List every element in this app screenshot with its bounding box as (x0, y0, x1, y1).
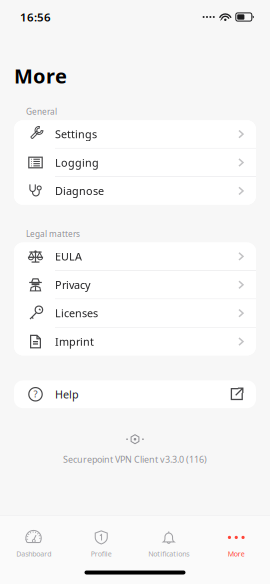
button[interactable]: Dashboard (0, 530, 67, 558)
staticText: EULA (55, 249, 82, 264)
staticText: Privacy (55, 277, 91, 292)
staticText: Logging (55, 155, 99, 170)
staticText: Notifications (148, 549, 189, 558)
staticText: 16:56 (20, 9, 51, 25)
button[interactable]: ? (14, 380, 256, 408)
button[interactable]: Diagnose (14, 177, 256, 205)
button[interactable]: Privacy (14, 271, 256, 299)
button[interactable]: EULA (14, 242, 256, 270)
button[interactable]: More (202, 530, 270, 558)
staticText: Legal matters (26, 228, 80, 240)
button[interactable]: Notifications (135, 530, 202, 558)
button[interactable]: Settings (14, 120, 256, 148)
button[interactable]: Licenses (14, 299, 256, 327)
button[interactable]: Imprint (14, 328, 256, 355)
staticText: Profile (91, 549, 112, 558)
staticText: More (14, 62, 67, 89)
button[interactable]: Logging (14, 149, 256, 176)
staticText: General (26, 106, 57, 117)
button[interactable]: Profile (67, 530, 135, 558)
staticText: More (228, 549, 245, 558)
staticText: Help (55, 387, 79, 402)
staticText: Licenses (55, 306, 98, 320)
staticText: Settings (55, 127, 97, 141)
staticText: Dashboard (16, 549, 51, 558)
staticText: Imprint (55, 334, 94, 349)
staticText: Diagnose (55, 184, 104, 198)
staticText: Securepoint VPN Client v3.3.0 (116) (63, 453, 207, 465)
staticText: ? (33, 388, 37, 400)
